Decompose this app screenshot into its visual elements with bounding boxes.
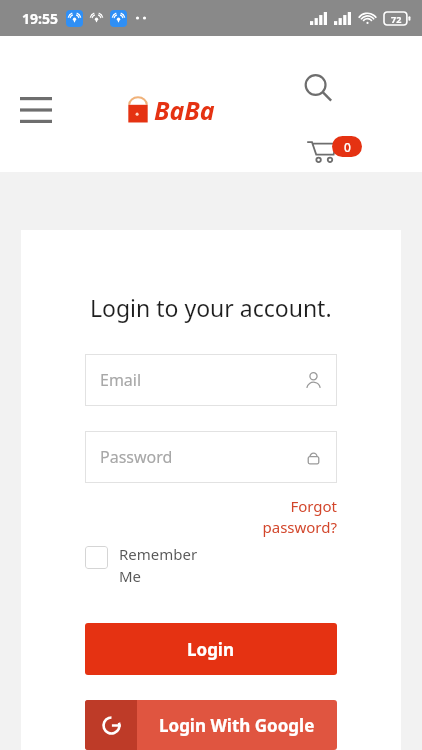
button[interactable]: Remember Me [85, 544, 337, 587]
button[interactable]: BaBa [127, 93, 215, 127]
staticText: Email [100, 369, 142, 391]
button[interactable]: Login [85, 623, 337, 675]
staticText: Login to your account. [90, 292, 332, 323]
staticText: Login With Google [159, 714, 315, 737]
button[interactable]: Password [85, 431, 337, 483]
button[interactable]: Search [296, 66, 340, 110]
staticText: 0 [344, 139, 351, 155]
button[interactable]: Menu [12, 86, 60, 134]
staticText: Remember Me [119, 544, 198, 587]
button[interactable]: Cart, 0 items [298, 128, 344, 174]
staticText: BaBa [154, 93, 215, 127]
staticText: 72 [391, 13, 402, 25]
button[interactable]: Login With Google [85, 700, 337, 750]
button[interactable]: Email [85, 354, 337, 406]
staticText: Password [100, 446, 173, 468]
staticText: Login [187, 638, 235, 661]
button[interactable]: Forgot password? [262, 496, 337, 538]
staticText: 19:55 [22, 9, 58, 28]
